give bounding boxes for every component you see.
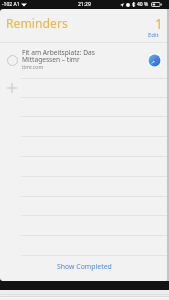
button[interactable]: Show Completed [0,255,169,277]
staticText: 1 [155,15,163,33]
staticText: Mittagessen – timr [22,55,80,64]
button[interactable]: Open in Safari [148,54,161,67]
staticText: timr.com [22,63,44,70]
staticText: 40 % [137,1,149,8]
staticText: 21:29 [78,1,91,8]
button[interactable]: Edit [146,31,161,39]
staticText: Fit am Arbeitsplatz: Das [22,48,95,57]
button[interactable]: Fit am Arbeitsplatz: Das [0,43,169,78]
staticText: Reminders [6,15,68,32]
staticText: Edit [148,31,159,39]
button[interactable]: Add reminder [0,78,169,98]
staticText: Show Completed [57,262,112,271]
staticText: -102 A1 [2,1,20,8]
